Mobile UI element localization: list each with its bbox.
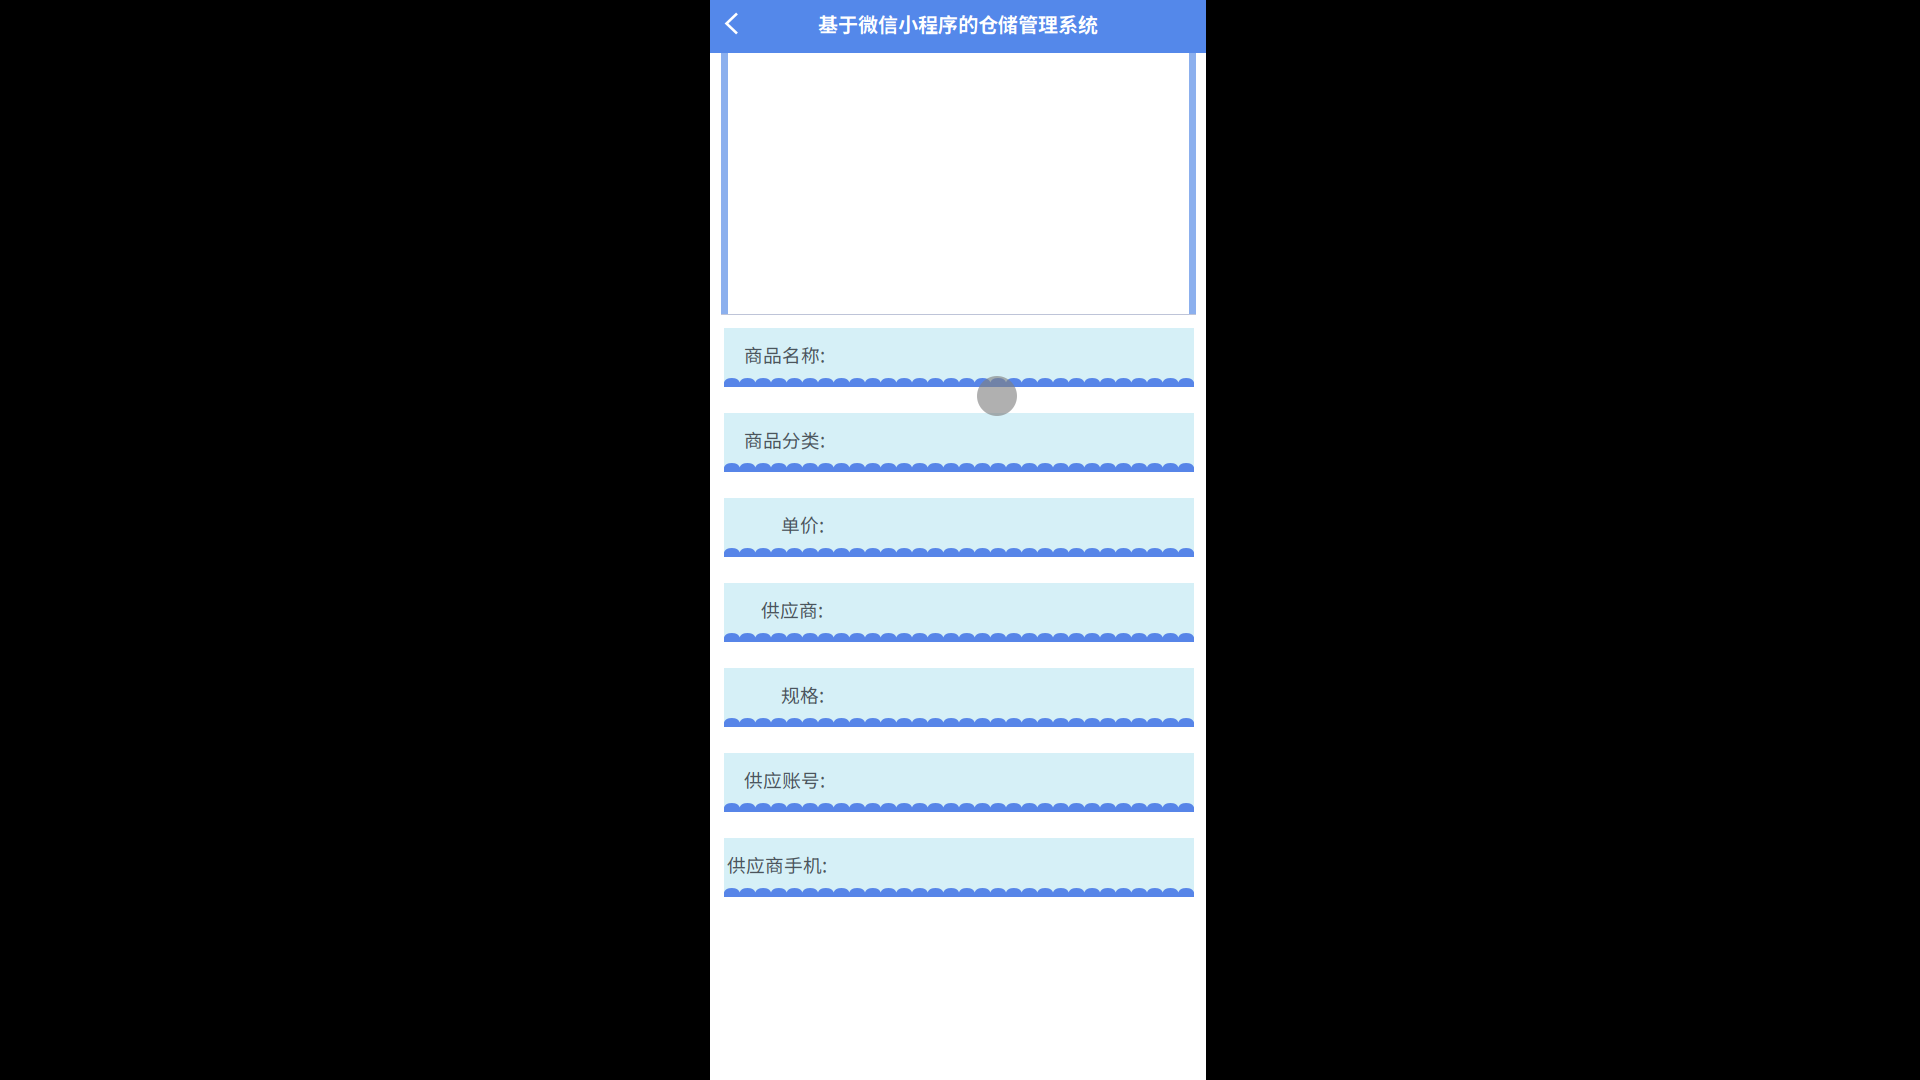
button[interactable]: 供应商手机: [724,838,1194,897]
staticText: 单价: [781,511,824,538]
button[interactable]: 商品名称: [724,328,1194,387]
button[interactable]: 供应商: [724,583,1194,642]
staticText: 供应账号: [744,766,825,793]
staticText: 商品名称: [744,341,825,368]
staticText: 商品分类: [744,426,825,453]
button[interactable]: 单价: [724,498,1194,557]
button[interactable]: 商品分类: [724,413,1194,472]
button[interactable]: 供应账号: [724,753,1194,812]
staticText: 供应商: [761,596,823,623]
button[interactable]: 规格: [724,668,1194,727]
button[interactable]: Back [710,0,750,53]
staticText: 基于微信小程序的仓储管理系统 [818,9,1098,38]
staticText: 规格: [781,681,824,708]
staticText: 供应商手机: [727,851,827,878]
